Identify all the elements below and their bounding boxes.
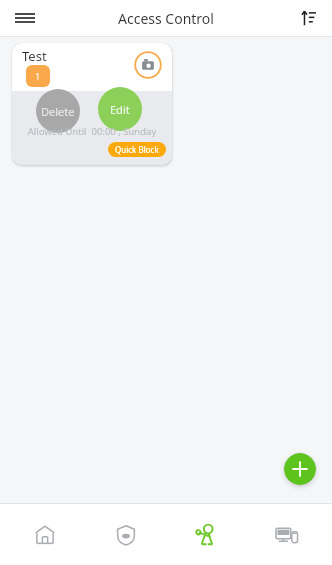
staticText: Test bbox=[22, 47, 47, 65]
staticText: Quick Block bbox=[115, 144, 159, 155]
button[interactable]: Devices bbox=[251, 507, 323, 563]
button[interactable]: Quick Block bbox=[108, 142, 166, 157]
staticText: Edit bbox=[110, 102, 130, 117]
button[interactable]: Edit bbox=[98, 87, 142, 131]
staticText: Allowed Until 00:00 , Sunday bbox=[12, 125, 172, 138]
button[interactable]: Menu bbox=[8, 1, 42, 35]
staticText: 1 bbox=[35, 70, 41, 82]
button[interactable]: Sort bbox=[292, 2, 324, 34]
button[interactable]: Access Control bbox=[170, 507, 242, 563]
button[interactable]: Home bbox=[9, 507, 81, 563]
button[interactable]: Delete bbox=[36, 89, 80, 133]
button[interactable]: Security bbox=[90, 507, 162, 563]
button[interactable]: Camera bbox=[134, 51, 162, 79]
staticText: Delete bbox=[41, 104, 75, 119]
button[interactable]: Add bbox=[284, 453, 316, 485]
staticText: Access Control bbox=[118, 9, 214, 28]
button[interactable]: Test bbox=[12, 43, 172, 165]
button[interactable]: 1 bbox=[26, 65, 50, 87]
